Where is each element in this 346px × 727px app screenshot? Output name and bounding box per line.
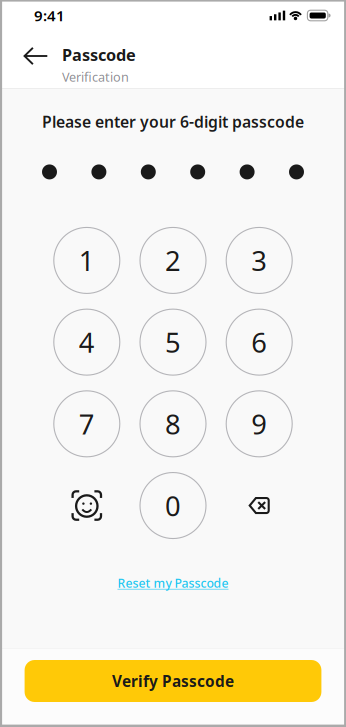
button[interactable]: 7	[54, 391, 120, 457]
button[interactable]: 9	[226, 391, 292, 457]
staticText: 5	[165, 323, 181, 361]
button[interactable]: Delete	[226, 472, 292, 538]
button[interactable]: 1	[54, 227, 120, 293]
staticText: 3	[251, 242, 267, 279]
button[interactable]: Back	[15, 35, 57, 77]
button[interactable]: 0	[140, 472, 206, 538]
staticText: 6	[251, 323, 267, 361]
button[interactable]: Reset my Passcode	[107, 568, 238, 597]
staticText: 7	[79, 405, 95, 442]
button[interactable]: 8	[140, 391, 206, 457]
staticText: Verify Passcode	[112, 671, 234, 691]
staticText: Verification	[62, 68, 129, 85]
staticText: 9	[251, 405, 267, 442]
button[interactable]: 2	[140, 227, 206, 293]
button[interactable]: 4	[54, 309, 120, 375]
staticText: Please enter your 6-digit passcode	[42, 111, 304, 132]
button[interactable]: Face ID	[54, 472, 120, 538]
staticText: 4	[79, 323, 95, 361]
staticText: 2	[165, 242, 181, 279]
button[interactable]: 3	[226, 227, 292, 293]
staticText: 1	[79, 242, 95, 279]
staticText: 9:41	[34, 5, 65, 26]
staticText: Passcode	[62, 43, 136, 66]
button[interactable]: 6	[226, 309, 292, 375]
button[interactable]: 5	[140, 309, 206, 375]
staticText: 0	[165, 487, 181, 524]
staticText: Reset my Passcode	[117, 574, 228, 591]
button[interactable]: Verify Passcode	[25, 660, 321, 702]
staticText: 8	[165, 405, 181, 442]
